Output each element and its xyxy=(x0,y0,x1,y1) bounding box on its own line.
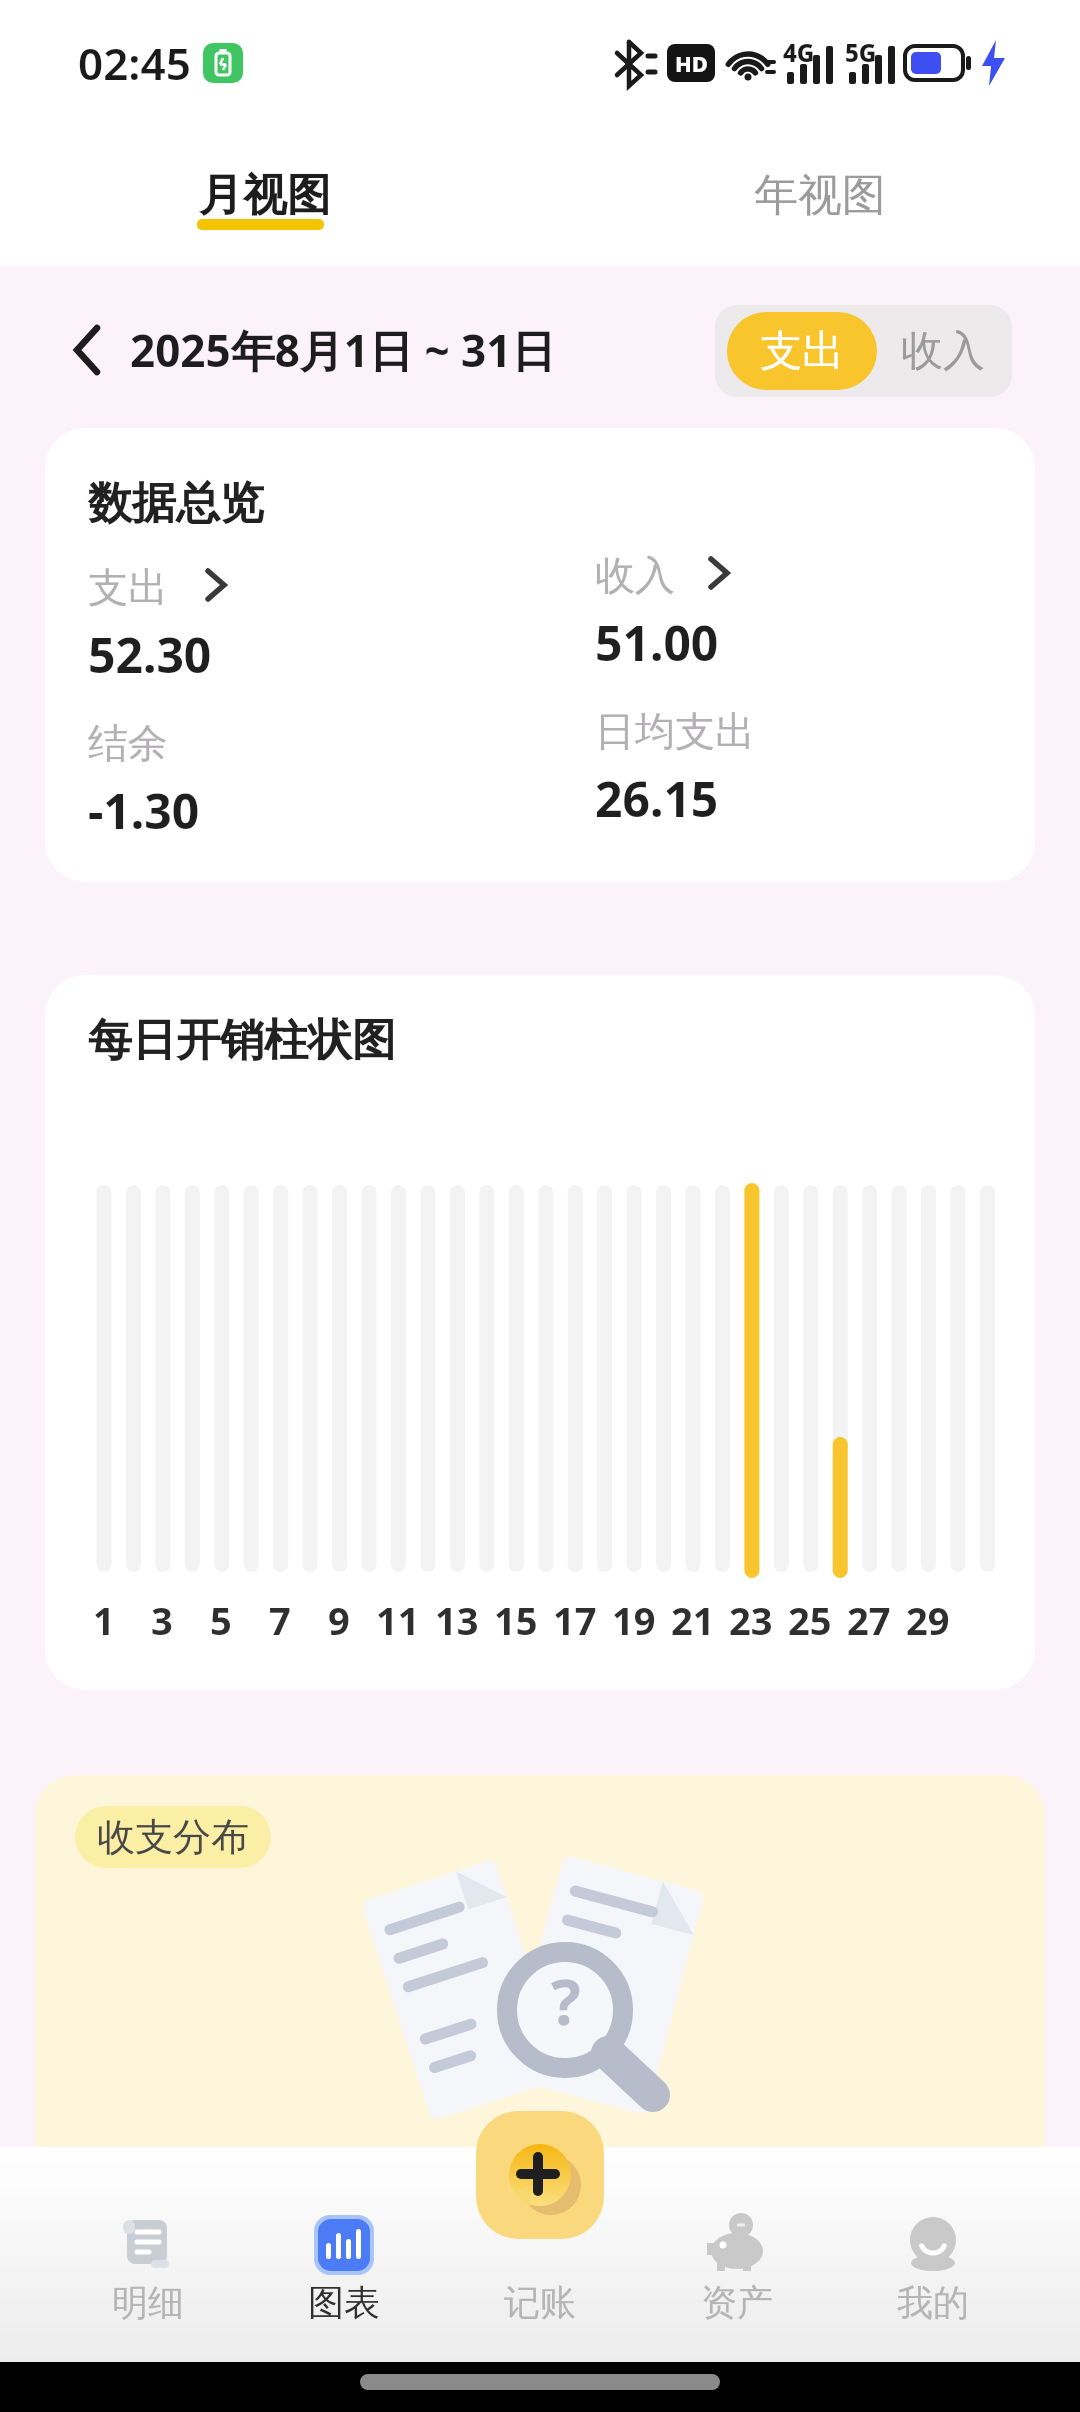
staticText: 15 xyxy=(494,1594,538,1646)
button[interactable] xyxy=(55,310,125,390)
button[interactable]: 月视图 xyxy=(150,140,380,250)
staticText: ? xyxy=(551,1959,581,2043)
staticText: 每日开销柱状图 xyxy=(88,1013,396,1068)
staticText: 51.00 xyxy=(595,610,719,675)
staticText: 记账 xyxy=(504,2280,576,2325)
staticText: 1 xyxy=(93,1594,115,1646)
button[interactable] xyxy=(88,560,248,615)
staticText: 11 xyxy=(376,1594,420,1646)
button[interactable]: 收支分布 xyxy=(75,1806,271,1868)
button[interactable]: 年视图 xyxy=(705,140,935,250)
button[interactable]: 资产 xyxy=(647,2155,827,2355)
staticText: 26.15 xyxy=(595,766,719,831)
staticText: 结余 xyxy=(88,718,168,768)
staticText: 2025年8月1日 ~ 31日 xyxy=(130,320,556,380)
staticText: 收入 xyxy=(595,550,675,600)
staticText: 明细 xyxy=(112,2280,184,2325)
staticText: 52.30 xyxy=(88,622,212,687)
staticText: 19 xyxy=(612,1594,656,1646)
staticText: 27 xyxy=(847,1594,891,1646)
button[interactable]: 支出 xyxy=(727,312,877,390)
staticText: 23 xyxy=(729,1594,773,1646)
staticText: 收入 xyxy=(901,325,985,378)
staticText: 21 xyxy=(671,1594,715,1646)
staticText: 02:45 xyxy=(78,33,191,93)
staticText: 29 xyxy=(906,1594,950,1646)
staticText: 3 xyxy=(151,1594,173,1646)
staticText: 5G xyxy=(845,36,877,66)
staticText: 数据总览 xyxy=(88,476,264,531)
staticText: 支出 xyxy=(760,325,844,378)
button[interactable]: 收入 xyxy=(880,312,1005,390)
staticText: 我的 xyxy=(897,2280,969,2325)
staticText: 日均支出 xyxy=(595,706,755,756)
staticText: -1.30 xyxy=(88,778,200,843)
button[interactable] xyxy=(476,2111,604,2239)
staticText: 4G xyxy=(783,36,815,66)
staticText: 支出 xyxy=(88,562,168,612)
staticText: 7 xyxy=(269,1594,291,1646)
staticText: 图表 xyxy=(308,2280,380,2325)
staticText: 月视图 xyxy=(199,168,331,223)
button[interactable]: 明细 xyxy=(58,2155,238,2355)
staticText: 17 xyxy=(553,1594,597,1646)
staticText: 收支分布 xyxy=(97,1813,249,1861)
button[interactable]: 记账 xyxy=(450,2155,630,2355)
button[interactable]: 图表 xyxy=(254,2155,434,2355)
staticText: 25 xyxy=(788,1594,832,1646)
button[interactable] xyxy=(595,548,755,603)
staticText: 9 xyxy=(328,1594,350,1646)
staticText: 5 xyxy=(210,1594,232,1646)
staticText: 资产 xyxy=(701,2280,773,2325)
staticText: HD xyxy=(675,48,708,78)
staticText: 13 xyxy=(435,1594,479,1646)
staticText: 年视图 xyxy=(754,168,886,223)
button[interactable]: 我的 xyxy=(843,2155,1023,2355)
